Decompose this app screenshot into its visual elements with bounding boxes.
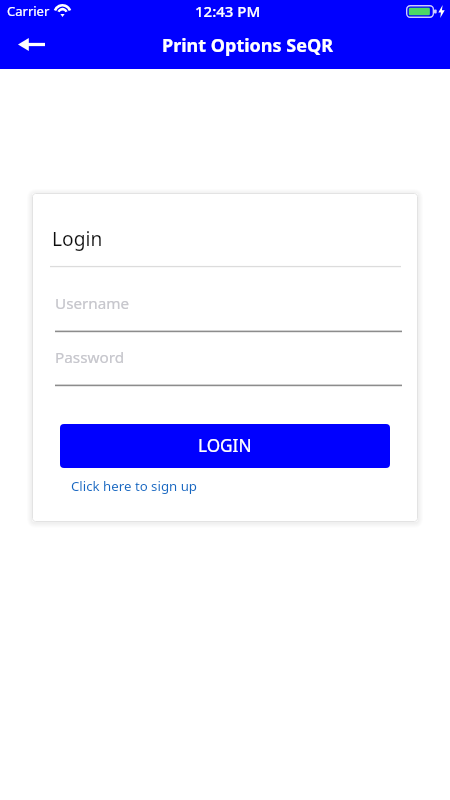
button[interactable]: Password: [55, 343, 402, 387]
staticText: Carrier: [7, 2, 50, 20]
staticText: Username: [55, 293, 130, 314]
staticText: Click here to sign up: [71, 477, 198, 495]
staticText: LOGIN: [198, 434, 252, 457]
button[interactable]: Click here to sign up: [67, 477, 202, 495]
staticText: Password: [55, 347, 125, 368]
button[interactable]: Username: [55, 289, 402, 333]
staticText: Print Options SeQR: [162, 33, 333, 58]
staticText: 12:43 PM: [195, 1, 261, 21]
button[interactable]: Back: [13, 28, 49, 64]
staticText: Login: [52, 225, 103, 251]
button[interactable]: LOGIN: [60, 424, 390, 468]
